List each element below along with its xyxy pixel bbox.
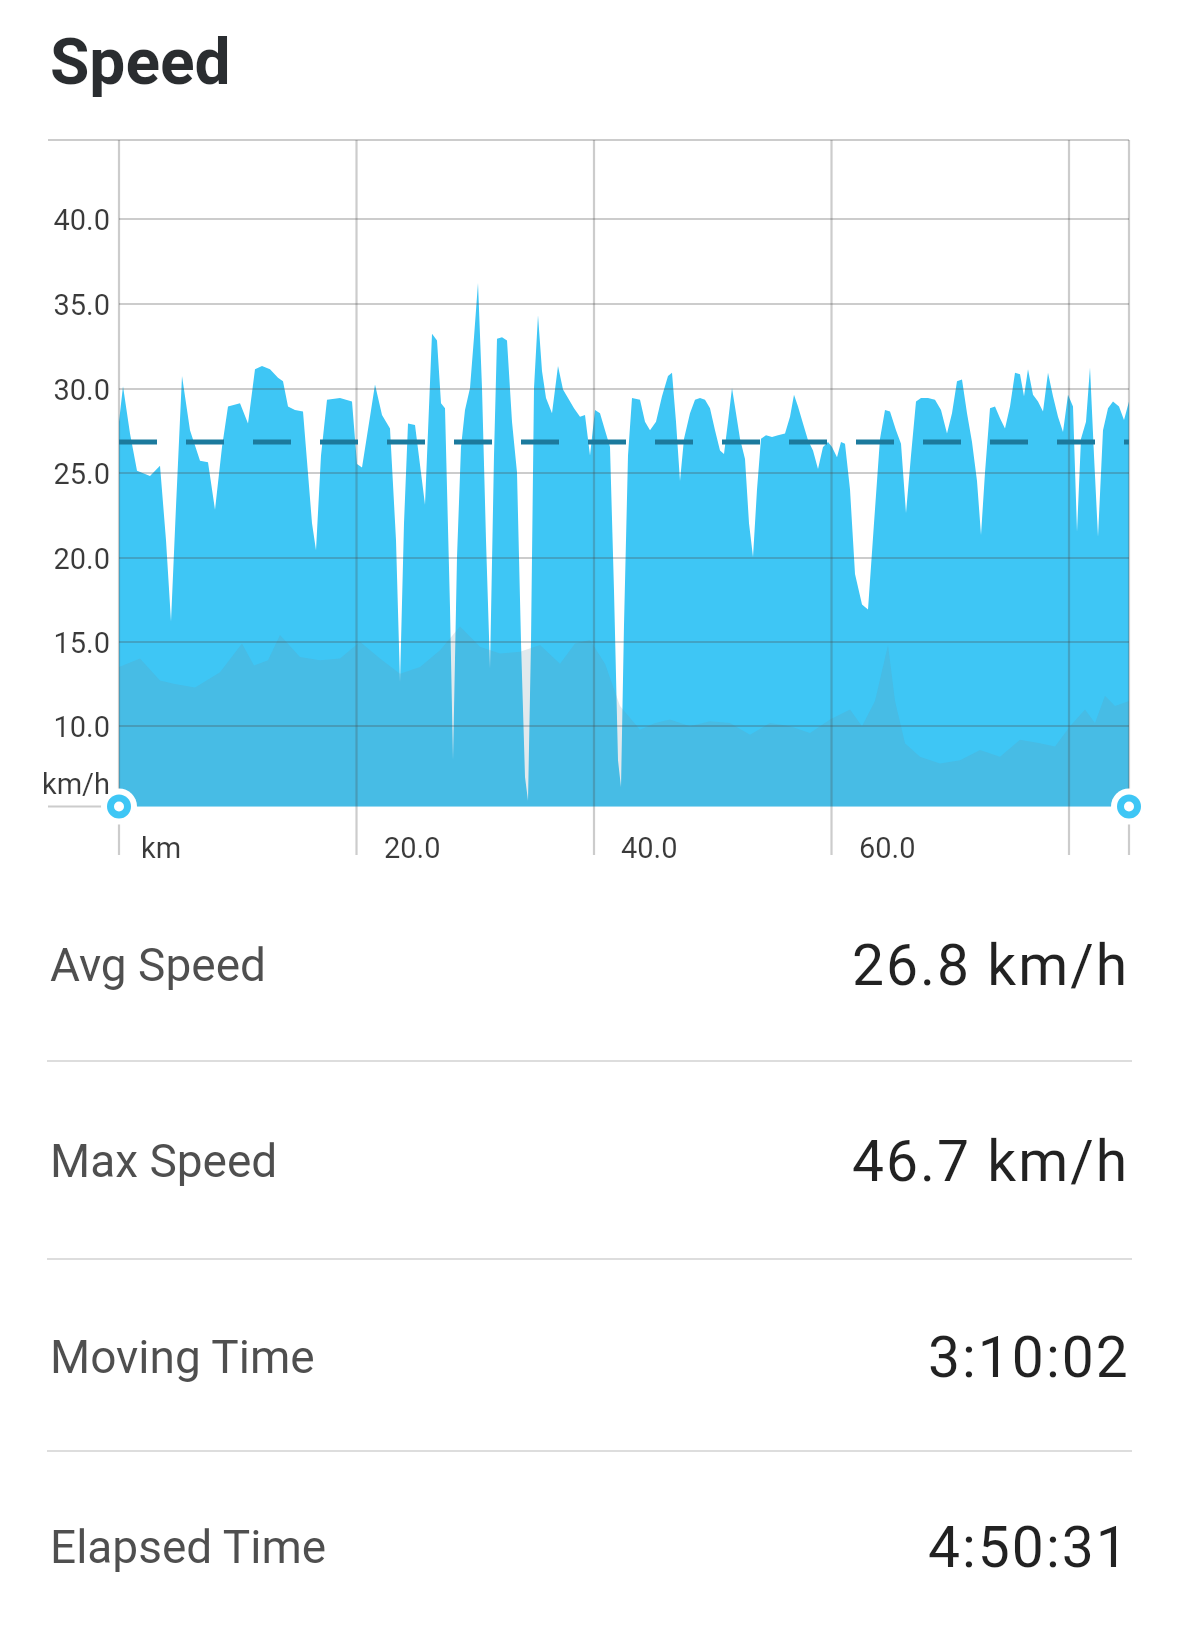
staticText: Moving Time: [50, 1330, 315, 1384]
staticText: km: [141, 831, 182, 865]
staticText: 30.0: [0, 373, 110, 407]
staticText: 40.0: [621, 831, 678, 865]
button[interactable]: Moving Time: [0, 1295, 1179, 1419]
staticText: Max Speed: [50, 1134, 278, 1188]
staticText: 46.7 km/h: [852, 1128, 1130, 1195]
staticText: km/h: [0, 767, 110, 801]
staticText: 40.0: [0, 203, 110, 237]
button[interactable]: Avg Speed: [0, 903, 1179, 1027]
staticText: 20.0: [384, 831, 441, 865]
staticText: Elapsed Time: [50, 1520, 327, 1574]
staticText: 3:10:02: [928, 1324, 1130, 1391]
staticText: 35.0: [0, 288, 110, 322]
staticText: Speed: [50, 25, 231, 100]
staticText: 25.0: [0, 457, 110, 491]
staticText: 26.8 km/h: [852, 932, 1130, 999]
button[interactable]: Elapsed Time: [0, 1485, 1179, 1609]
staticText: 10.0: [0, 710, 110, 744]
button[interactable]: [0, 0, 1179, 1630]
button[interactable]: Max Speed: [0, 1099, 1179, 1223]
staticText: 4:50:31: [928, 1514, 1130, 1581]
staticText: 20.0: [0, 542, 110, 576]
staticText: 60.0: [859, 831, 916, 865]
staticText: Avg Speed: [50, 938, 266, 992]
staticText: 15.0: [0, 626, 110, 660]
